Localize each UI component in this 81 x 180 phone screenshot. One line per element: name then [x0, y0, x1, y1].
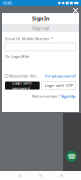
button[interactable]: Not a member? — [5, 93, 76, 99]
staticText: Email Or Mobile Number * — [5, 36, 53, 41]
button[interactable]: Login with password — [5, 81, 40, 89]
button[interactable]: WhatsApp — [66, 151, 77, 162]
button[interactable]: Login with OTP — [41, 81, 76, 89]
staticText: SignUp — [61, 93, 76, 99]
staticText: Login with OTP — [45, 83, 73, 88]
button[interactable]: Sign up — [2, 24, 79, 32]
button[interactable]: Forgot password? — [45, 73, 76, 78]
staticText: 10:45 — [2, 0, 11, 6]
staticText: Or Login With — [5, 54, 29, 59]
staticText: Login with password — [12, 80, 32, 91]
button[interactable]: Remember Me — [5, 73, 36, 78]
staticText: Sign up — [32, 24, 49, 32]
staticText: Remember Me — [9, 73, 36, 78]
staticText: Not a member? — [32, 93, 60, 99]
button[interactable]: Close — [72, 7, 79, 14]
button[interactable]: Sign In — [2, 13, 79, 24]
staticText: Forgot password? — [45, 73, 76, 78]
staticText: ☎ — [67, 153, 75, 160]
staticText: Sign In — [32, 15, 49, 22]
